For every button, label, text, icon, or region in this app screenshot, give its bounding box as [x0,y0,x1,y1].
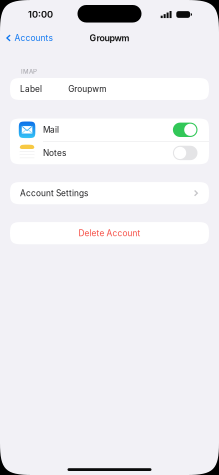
button[interactable]: Accounts [0,30,58,46]
button[interactable]: Account Settings [10,182,209,204]
button[interactable]: Delete Account [10,222,209,244]
staticText: Groupwm [68,84,106,94]
staticText: Delete Account [78,228,140,238]
staticText: Notes [43,148,66,158]
staticText: Groupwm [89,33,129,43]
staticText: 10:00 [28,9,53,20]
staticText: IMAP [21,68,37,75]
staticText: Label [20,84,42,94]
staticText: Accounts [14,33,52,43]
staticText: Mail [43,125,59,135]
staticText: Account Settings [20,188,88,198]
